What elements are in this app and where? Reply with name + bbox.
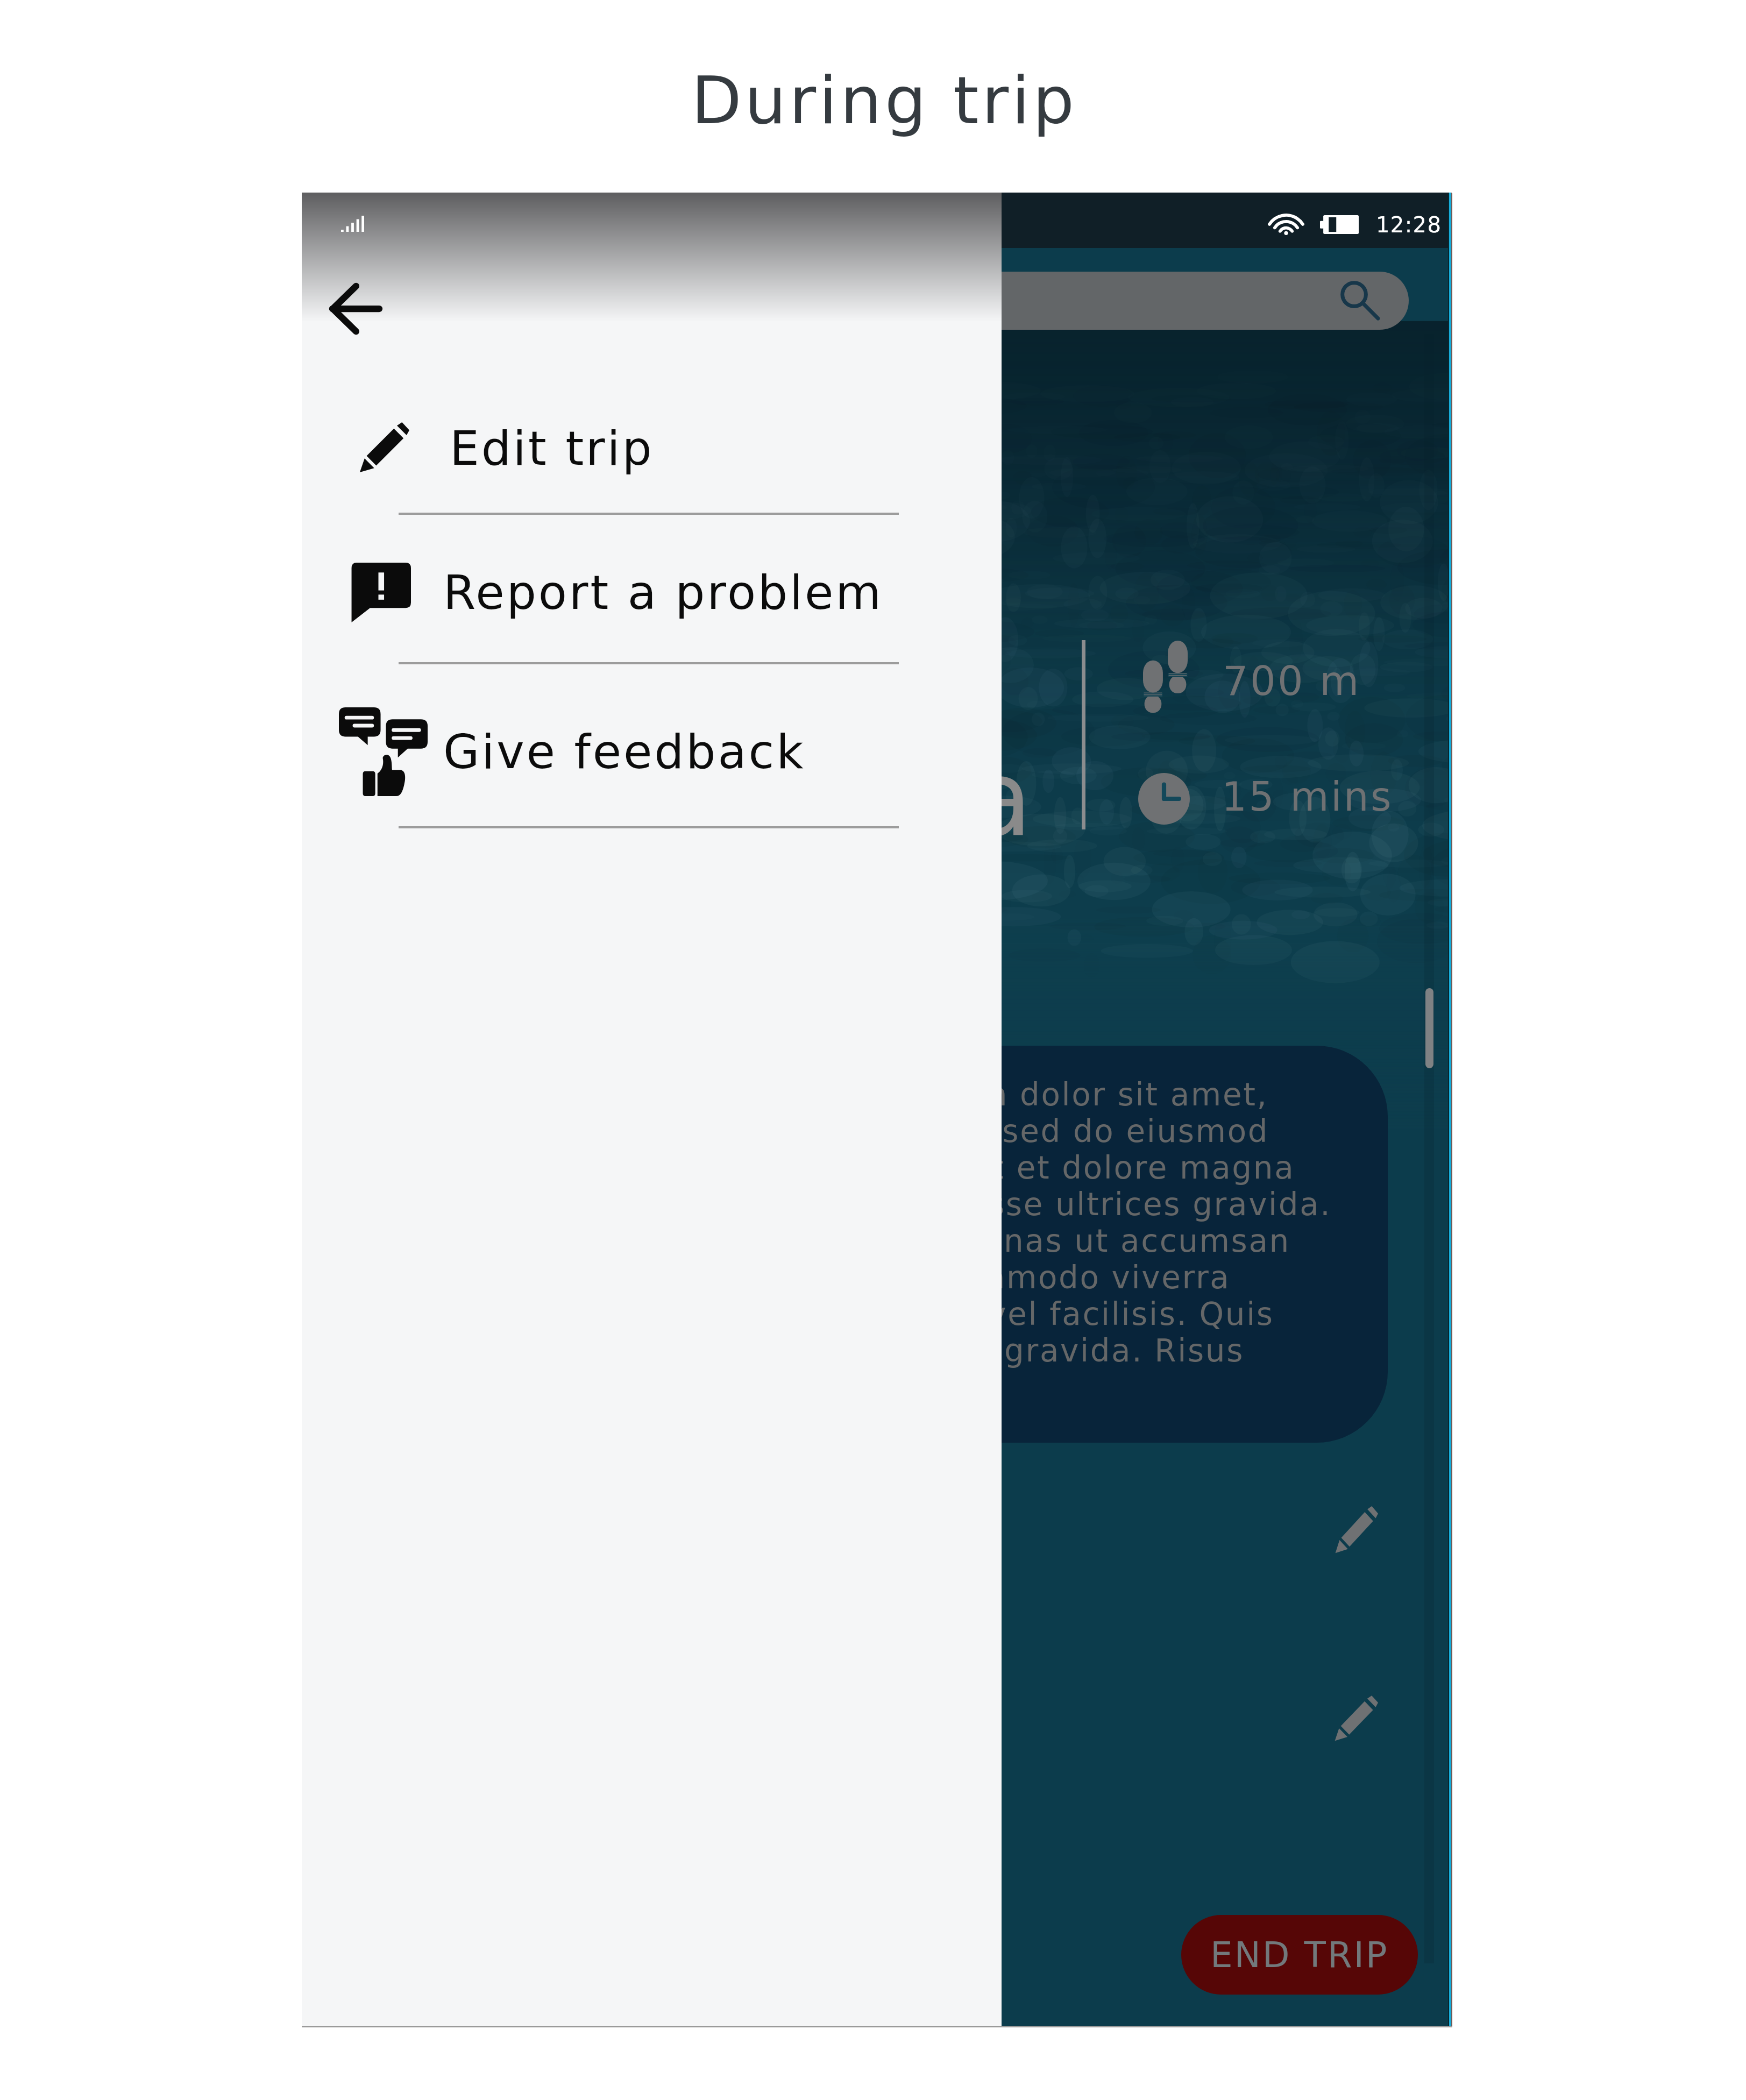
staticText: incididunt ut et dolore magna: [791, 1150, 1295, 1186]
button[interactable]: Edit: [1335, 1507, 1378, 1554]
staticText: 15 mins: [1222, 774, 1393, 820]
button[interactable]: END TRIP: [1181, 1915, 1418, 1995]
staticText: a. Suspendisse ultrices gravida.: [791, 1186, 1332, 1223]
staticText: 700 m: [1223, 657, 1361, 704]
button[interactable]: Search: [302, 272, 1409, 330]
staticText: Report a problem: [443, 565, 883, 620]
staticText: Risus maecenas ut accumsan: [791, 1223, 1290, 1259]
staticText: Lorem ipsum dolor sit amet,: [791, 1076, 1268, 1113]
staticText: consectetur sed do eiusmod: [791, 1113, 1269, 1150]
staticText: END TRIP: [1210, 1934, 1389, 1976]
staticText: 12:28: [1376, 212, 1442, 238]
button[interactable]: Back: [328, 282, 381, 335]
button[interactable]: Lorem ipsum dolor sit amet,: [737, 1046, 1388, 1443]
staticText: lacus et commodo viverra: [791, 1259, 1231, 1296]
staticText: During trip: [691, 62, 1077, 139]
staticText: Give feedback: [443, 725, 806, 779]
button[interactable]: Report a problem: [302, 520, 1002, 664]
button[interactable]: Edit: [1334, 1696, 1378, 1742]
staticText: dio sit amet gravida. Risus: [791, 1332, 1244, 1369]
button[interactable]: Edit trip: [302, 381, 1002, 515]
button[interactable]: Give feedback: [302, 675, 1002, 828]
staticText: Edit trip: [450, 421, 654, 476]
staticText: Luanda: [631, 737, 1036, 860]
staticText: lacus dolor vel facilisis. Quis: [791, 1296, 1274, 1332]
